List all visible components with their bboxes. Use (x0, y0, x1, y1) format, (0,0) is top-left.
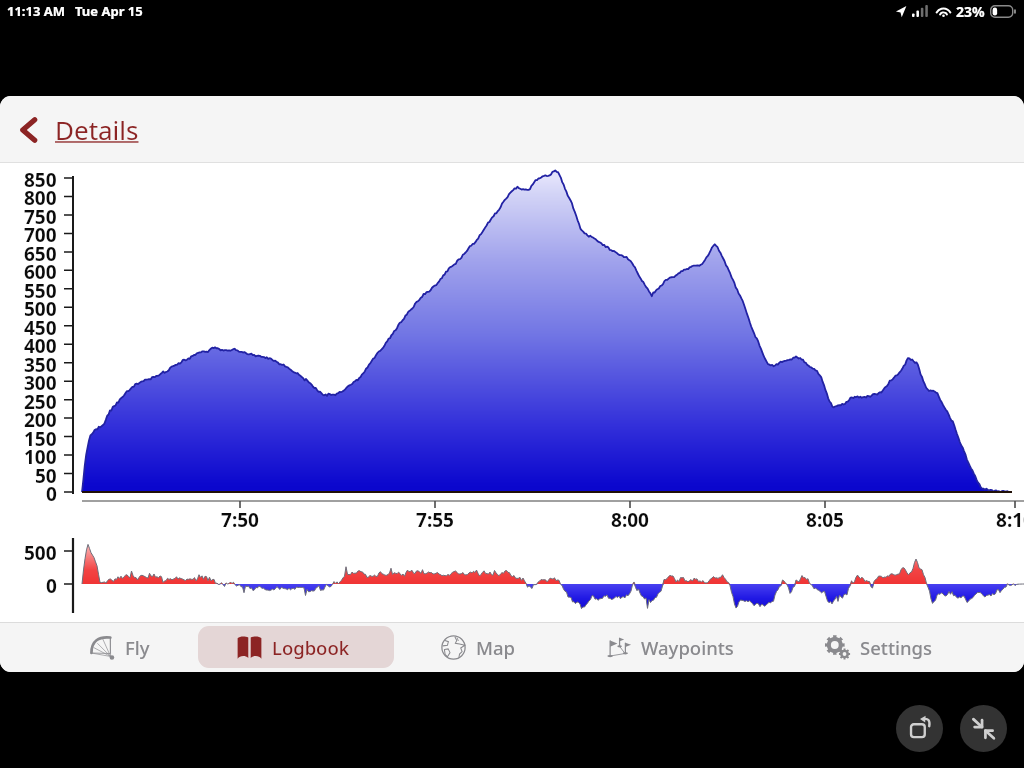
staticText: 100 (24, 444, 57, 470)
staticText: 11:13 AM (7, 2, 66, 20)
button[interactable]: Details (16, 112, 139, 147)
staticText: 0 (46, 481, 57, 507)
staticText: 8:10 (996, 507, 1024, 533)
button[interactable]: Logbook (198, 626, 394, 668)
staticText: 150 (24, 426, 57, 452)
staticText: 0 (46, 573, 57, 599)
staticText: 650 (24, 241, 57, 267)
button[interactable]: Rotate window (896, 705, 943, 752)
staticText: 450 (24, 315, 57, 341)
button[interactable]: Map (430, 626, 580, 668)
staticText: 400 (24, 333, 57, 359)
staticText: 300 (24, 370, 57, 396)
staticText: Logbook (272, 635, 350, 660)
staticText: Waypoints (641, 635, 734, 660)
button[interactable]: Waypoints (595, 626, 745, 668)
staticText: 7:50 (221, 507, 259, 533)
staticText: 750 (24, 204, 57, 230)
staticText: 500 (24, 296, 57, 322)
staticText: Settings (860, 635, 933, 660)
staticText: 50 (35, 463, 57, 489)
button[interactable]: Fly (79, 626, 229, 668)
staticText: Map (476, 635, 516, 660)
staticText: Tue Apr 15 (75, 2, 143, 20)
staticText: 8:00 (611, 507, 649, 533)
staticText: 8:05 (806, 507, 844, 533)
button[interactable]: Shrink window (960, 705, 1007, 752)
staticText: 800 (24, 185, 57, 211)
staticText: 700 (24, 222, 57, 248)
button[interactable]: Settings (814, 626, 964, 668)
staticText: 850 (24, 167, 57, 193)
staticText: Fly (125, 635, 150, 660)
staticText: 550 (24, 278, 57, 304)
staticText: 23% (956, 2, 985, 21)
staticText: 500 (24, 540, 57, 566)
staticText: 7:55 (416, 507, 454, 533)
staticText: Details (55, 112, 139, 147)
staticText: 600 (24, 259, 57, 285)
staticText: 350 (24, 352, 57, 378)
staticText: 250 (24, 389, 57, 415)
staticText: 200 (24, 407, 57, 433)
